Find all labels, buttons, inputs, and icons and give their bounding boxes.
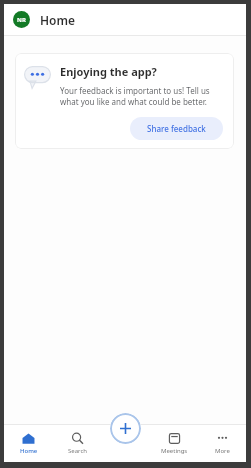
staticText: Enjoying the app? bbox=[60, 64, 157, 79]
button[interactable]: Account bbox=[13, 11, 30, 28]
button[interactable]: Share feedback bbox=[130, 117, 223, 140]
staticText: More bbox=[215, 447, 230, 455]
staticText: Meetings bbox=[161, 447, 188, 455]
staticText: NR bbox=[17, 16, 26, 24]
staticText: Share feedback bbox=[147, 123, 206, 134]
staticText: Home bbox=[20, 447, 38, 455]
button[interactable]: Meetings bbox=[150, 425, 198, 462]
button[interactable]: More bbox=[198, 425, 246, 462]
staticText: Home bbox=[40, 12, 76, 28]
button[interactable]: Search bbox=[53, 425, 102, 462]
staticText: Search bbox=[68, 447, 87, 455]
button[interactable]: Create new bbox=[110, 413, 141, 444]
button[interactable]: Home bbox=[4, 425, 53, 462]
staticText: Your feedback is important to us! Tell u… bbox=[60, 85, 223, 107]
